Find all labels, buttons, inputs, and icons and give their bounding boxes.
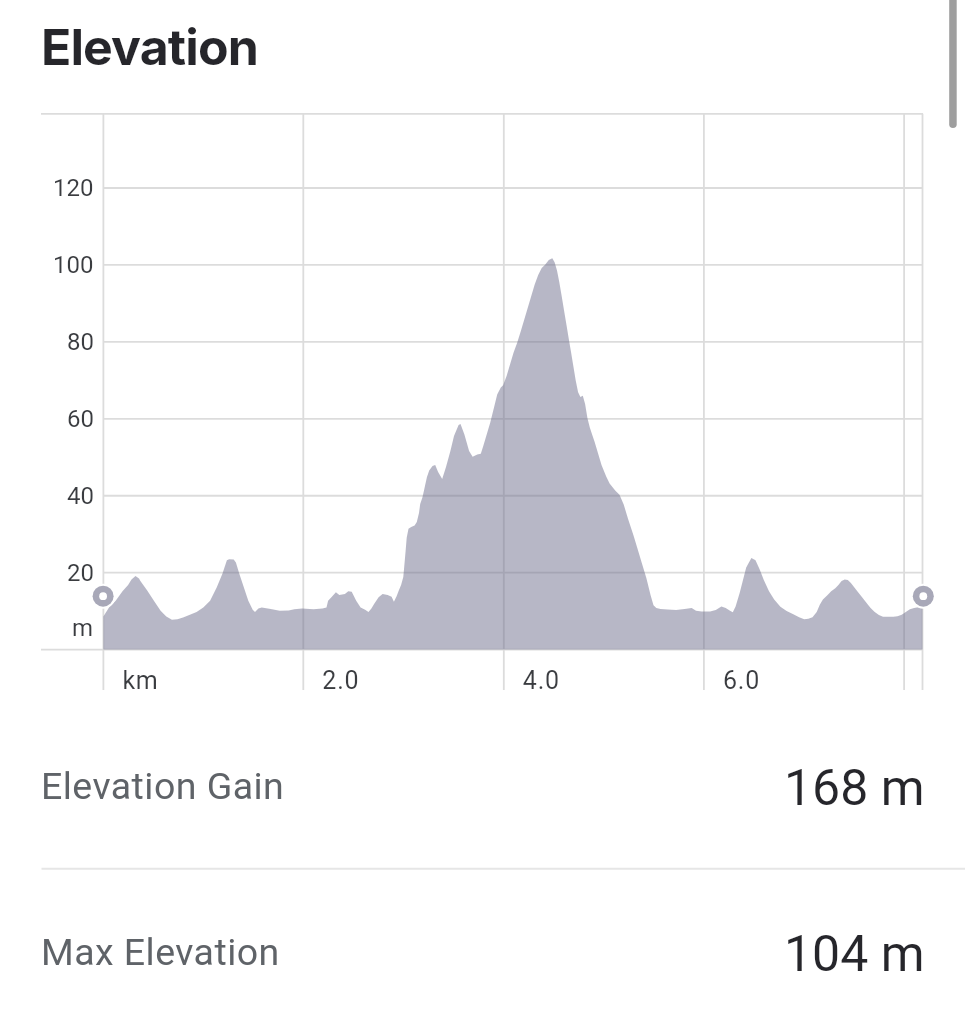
button[interactable]: Elevation Gain <box>0 703 965 869</box>
button[interactable]: Max Elevation <box>0 869 965 1024</box>
staticText: Elevation <box>41 17 258 77</box>
staticText: Elevation Gain <box>41 764 285 808</box>
staticText: Max Elevation <box>41 930 280 974</box>
staticText: 104 m <box>784 925 925 984</box>
staticText: 168 m <box>784 759 925 818</box>
